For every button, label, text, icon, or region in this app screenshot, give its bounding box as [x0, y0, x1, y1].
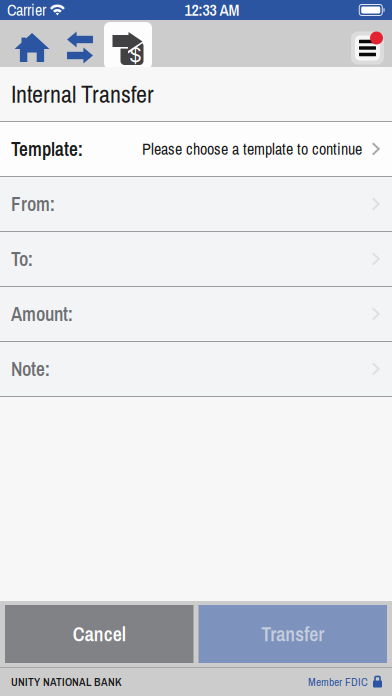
button[interactable]: Cancel — [5, 605, 193, 663]
staticText: Amount: — [11, 301, 73, 327]
button[interactable]: From: — [0, 177, 392, 232]
button[interactable]: Home — [8, 20, 56, 71]
staticText: Carrier — [7, 0, 46, 21]
staticText: Internal Transfer — [11, 78, 154, 110]
button[interactable]: Amount: — [0, 287, 392, 342]
staticText: $ — [129, 43, 142, 67]
staticText: Note: — [11, 356, 50, 382]
staticText: Transfer — [261, 620, 324, 647]
staticText: Template: — [11, 136, 83, 162]
staticText: From: — [11, 191, 55, 217]
staticText: Member FDIC — [308, 674, 368, 690]
staticText: Cancel — [73, 620, 126, 647]
button[interactable]: Internal Transfer — [104, 22, 152, 69]
button[interactable]: Transfers — [56, 20, 104, 71]
staticText: 12:33 AM — [184, 0, 239, 21]
button[interactable]: Transfer — [198, 605, 387, 663]
staticText: Please choose a template to continue — [142, 138, 362, 160]
button[interactable]: Menu — [351, 26, 384, 64]
staticText: UNITY NATIONAL BANK — [11, 674, 122, 690]
button[interactable]: Note: — [0, 342, 392, 397]
staticText: To: — [11, 246, 33, 272]
button[interactable]: To: — [0, 232, 392, 287]
button[interactable]: Template: — [0, 122, 392, 177]
